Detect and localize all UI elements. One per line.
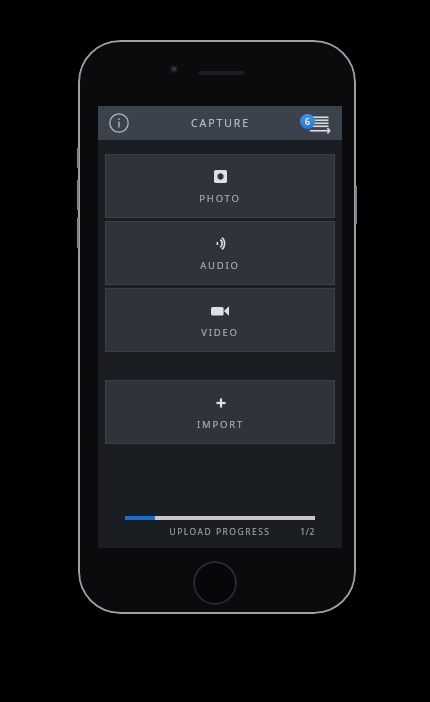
button[interactable]: Home — [193, 561, 237, 605]
staticText: PHOTO — [199, 192, 241, 205]
staticText: 6 — [305, 116, 310, 128]
staticText: IMPORT — [197, 418, 244, 431]
button[interactable]: IMPORT — [105, 380, 335, 444]
button[interactable]: VIDEO — [105, 288, 335, 352]
button[interactable]: Upload queue, 6 items — [297, 109, 337, 137]
button[interactable]: UPLOAD PROGRESS — [125, 516, 315, 538]
staticText: VIDEO — [201, 326, 239, 339]
staticText: 1/2 — [300, 526, 315, 538]
button[interactable]: Info — [106, 110, 132, 136]
staticText: UPLOAD PROGRESS — [169, 526, 271, 538]
button[interactable]: AUDIO — [105, 221, 335, 285]
button[interactable]: PHOTO — [105, 154, 335, 218]
staticText: CAPTURE — [191, 116, 250, 130]
staticText: AUDIO — [200, 259, 240, 272]
